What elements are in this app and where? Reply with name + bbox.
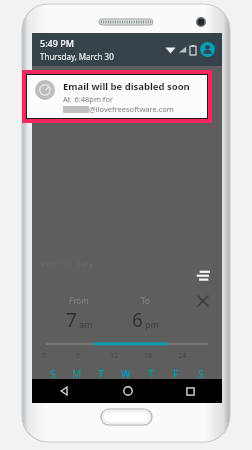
button[interactable]: T (89, 367, 113, 381)
staticText: F (173, 367, 179, 381)
button[interactable]: T (138, 367, 163, 381)
button[interactable]: Home (96, 379, 159, 403)
staticText: From (69, 295, 89, 306)
button[interactable]: F (163, 367, 188, 381)
staticText: To (141, 295, 150, 306)
staticText: T (98, 367, 104, 381)
button[interactable]: M (65, 367, 89, 381)
staticText: Thursday, March 30 (40, 51, 114, 62)
button[interactable]: From (46, 295, 112, 333)
staticText: S (50, 367, 56, 381)
button[interactable]: S (41, 367, 65, 381)
button[interactable]: To (112, 295, 178, 333)
button[interactable] (46, 340, 208, 354)
staticText: W (121, 367, 131, 381)
staticText: pm (145, 318, 159, 330)
staticText: 5:49 PM (40, 37, 74, 49)
button[interactable]: Account (200, 42, 215, 57)
staticText: Email will be disabled soon (63, 80, 190, 93)
button[interactable]: Sort (192, 265, 214, 287)
staticText: At 6:48pm for (63, 94, 114, 104)
button[interactable]: Email will be disabled soon (27, 75, 207, 118)
button[interactable]: Recent apps (159, 379, 222, 403)
staticText: S (198, 367, 204, 381)
staticText: 18 (144, 351, 178, 361)
button[interactable] (101, 409, 152, 425)
button[interactable]: Close (193, 291, 213, 311)
button[interactable]: W (113, 367, 138, 381)
staticText: am (79, 318, 93, 330)
staticText: T (148, 367, 154, 381)
staticText: 7 (66, 307, 77, 333)
staticText: 6 (132, 307, 143, 333)
staticText: @ilovefreesoftware.com (89, 104, 174, 114)
staticText: M (72, 367, 82, 381)
staticText: 24 (178, 351, 212, 361)
button[interactable]: S (188, 367, 213, 381)
button[interactable]: Back (32, 379, 96, 403)
